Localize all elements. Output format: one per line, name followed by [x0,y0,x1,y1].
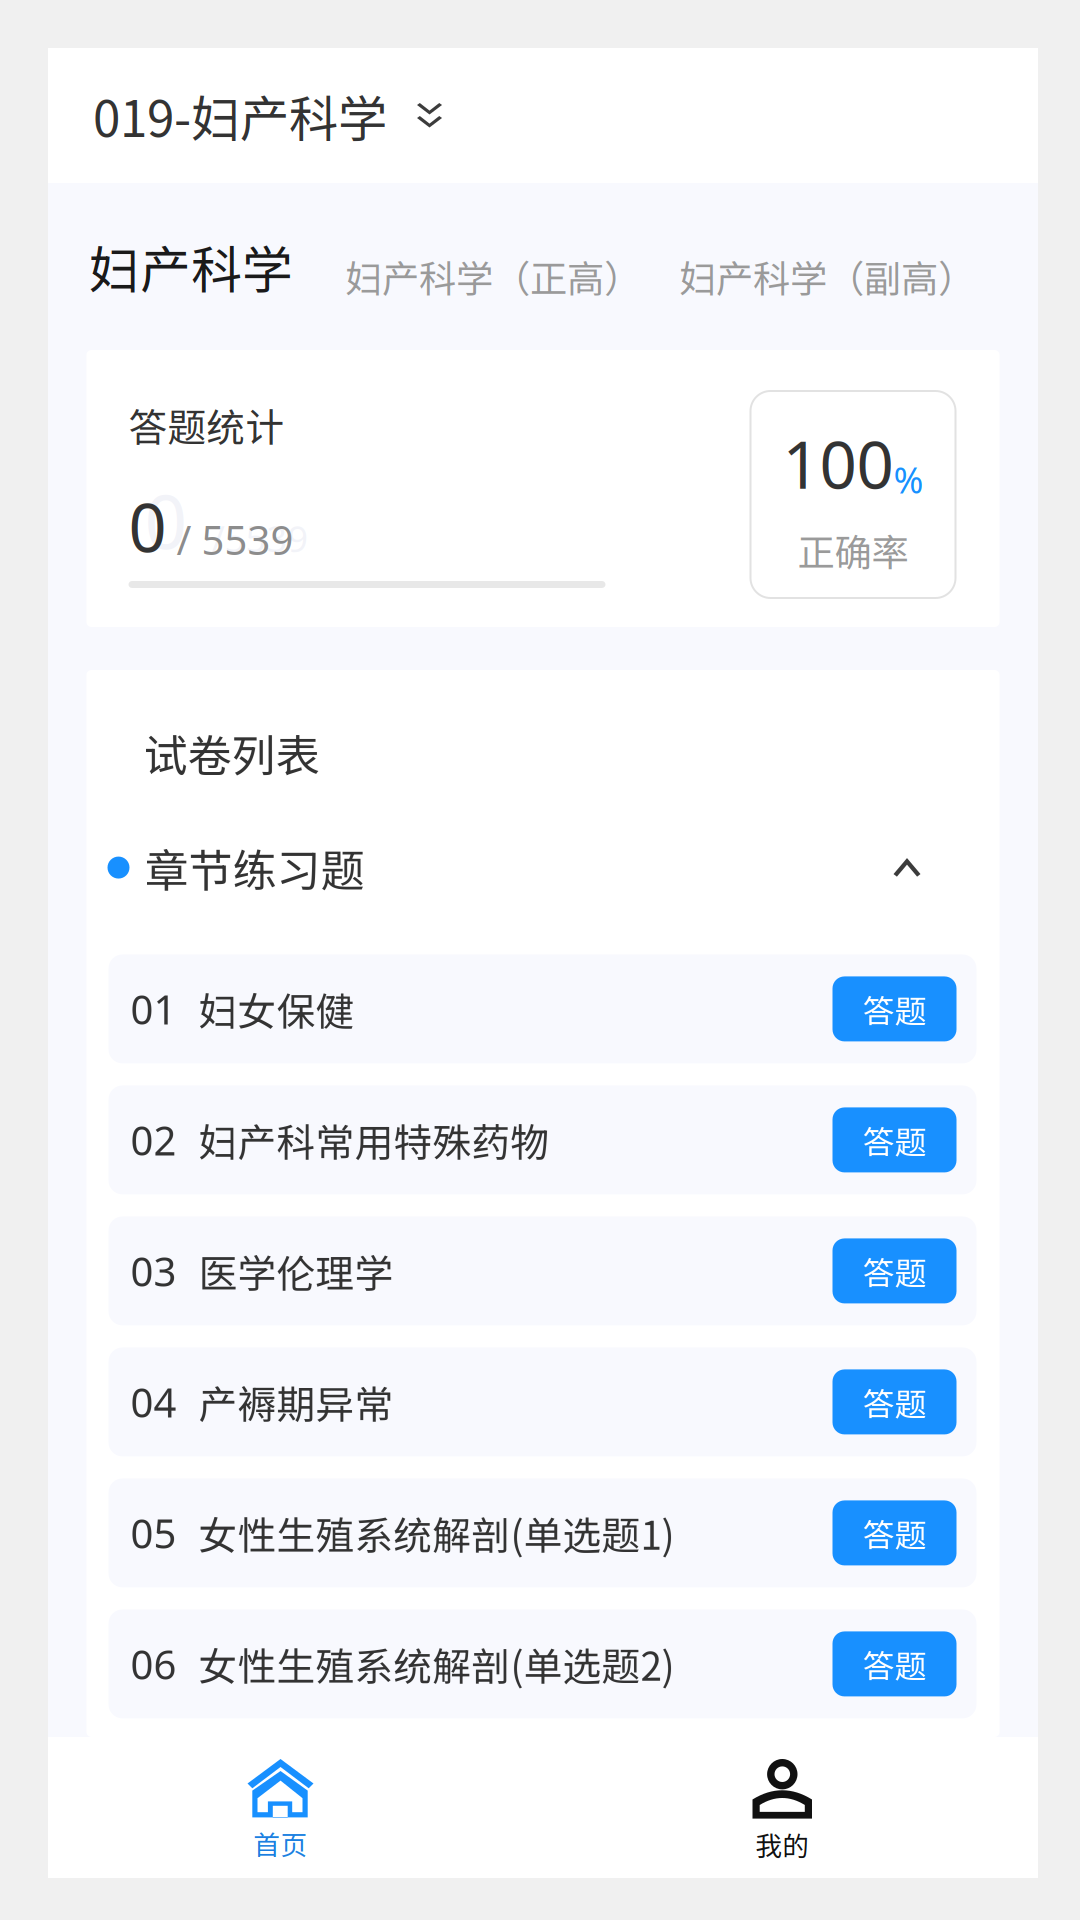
staticText: 妇女保健 [198,981,354,1037]
staticText: 答题 [862,1641,926,1687]
staticText: 02 [130,1113,176,1167]
staticText: /5539 [211,514,308,563]
staticText: 医学伦理学 [198,1243,393,1299]
staticText: 04 [130,1375,176,1429]
button[interactable]: 妇产科学（正高） [345,245,641,307]
staticText: 答题 [862,986,926,1032]
staticText: 答题统计 [128,397,284,453]
staticText: 女性生殖系统解剖(单选题2) [198,1636,674,1692]
staticText: 妇产科学（正高） [345,249,641,303]
staticText: 妇产科学（副高） [679,249,975,303]
button[interactable]: 06 [108,1609,976,1718]
button[interactable]: 首页 [164,1737,397,1878]
button[interactable]: 我的 [666,1737,899,1878]
staticText: 0 [144,469,187,571]
staticText: 首页 [253,1824,307,1863]
staticText: 正确率 [797,523,908,577]
button[interactable]: 04 [108,1347,976,1456]
button[interactable]: 03 [108,1216,976,1325]
staticText: 100 [782,419,893,508]
staticText: 06 [130,1637,176,1691]
button[interactable]: 章节练习题 [86,836,999,899]
staticText: 答题 [862,1248,926,1294]
button[interactable]: 01 [108,954,976,1063]
staticText: / 5539 [166,512,293,567]
staticText: 妇产科常用特殊药物 [198,1112,549,1168]
button[interactable]: 02 [108,1085,976,1194]
staticText: 05 [130,1506,176,1560]
staticText: 章节练习题 [144,836,364,899]
staticText: 产褥期异常 [198,1374,393,1430]
staticText: 我的 [755,1825,809,1864]
staticText: 妇产科学 [89,230,293,303]
staticText: 01 [130,982,176,1036]
staticText: % [893,455,923,504]
staticText: 答题 [862,1117,926,1163]
staticText: 女性生殖系统解剖(单选题1) [198,1505,674,1561]
button[interactable]: 妇产科学 [89,226,293,307]
staticText: 0 [128,481,166,572]
button[interactable]: 妇产科学（副高） [679,245,975,307]
staticText: 03 [130,1244,176,1298]
button[interactable]: 019-妇产科学 [48,62,460,169]
button[interactable]: 05 [108,1478,976,1587]
staticText: 答题 [862,1379,926,1425]
staticText: 试卷列表 [143,721,319,785]
staticText: 019-妇产科学 [93,80,387,151]
staticText: 答题 [862,1510,926,1556]
